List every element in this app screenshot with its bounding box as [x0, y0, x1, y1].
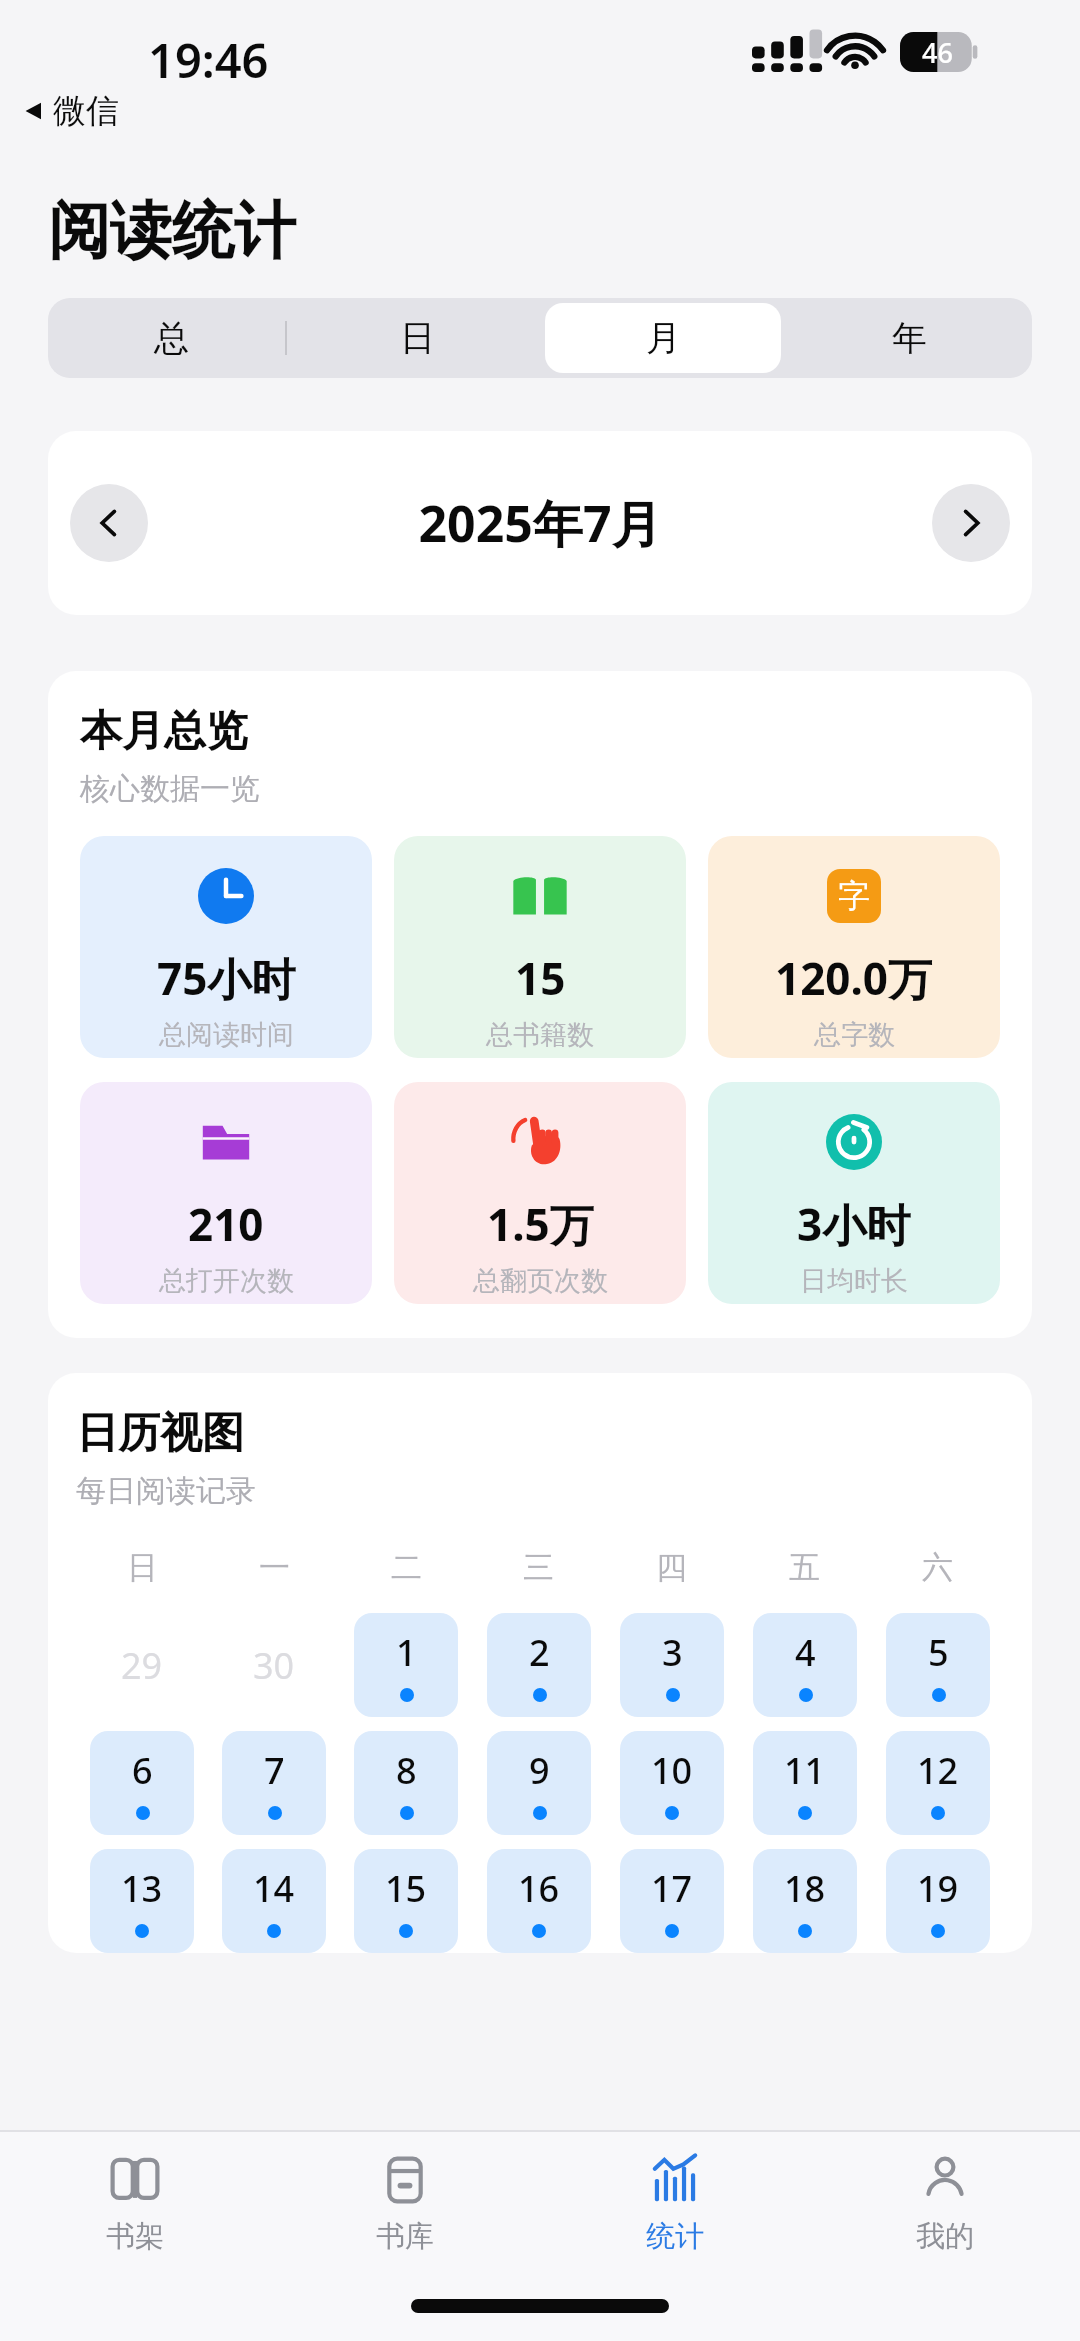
- button[interactable]: 总: [53, 303, 289, 373]
- button[interactable]: 我的: [810, 2132, 1080, 2282]
- button[interactable]: 3: [620, 1613, 724, 1717]
- staticText: 1.5万: [487, 1194, 594, 1254]
- staticText: 总打开次数: [159, 1264, 294, 1298]
- staticText: 阅读统计: [48, 192, 296, 270]
- staticText: 每日阅读记录: [76, 1472, 256, 1510]
- staticText: 16: [518, 1864, 560, 1913]
- staticText: 4: [795, 1628, 816, 1677]
- staticText: 书库: [376, 2218, 434, 2255]
- button[interactable]: 14: [222, 1849, 326, 1953]
- button[interactable]: 日: [299, 303, 535, 373]
- staticText: 字: [838, 876, 870, 916]
- button[interactable]: Previous month: [70, 484, 148, 562]
- staticText: 三: [523, 1548, 554, 1587]
- staticText: 二: [391, 1548, 422, 1587]
- staticText: 17: [651, 1864, 693, 1913]
- button[interactable]: 10: [620, 1731, 724, 1835]
- staticText: 46: [922, 34, 953, 71]
- staticText: 210: [188, 1194, 264, 1254]
- staticText: 75小时: [157, 948, 296, 1008]
- staticText: 微信: [53, 90, 119, 132]
- button[interactable]: 8: [354, 1731, 458, 1835]
- button[interactable]: 书库: [270, 2132, 540, 2282]
- staticText: 月: [646, 316, 681, 360]
- button[interactable]: 7: [222, 1731, 326, 1835]
- staticText: 8: [396, 1746, 417, 1795]
- staticText: 19:46: [148, 28, 269, 92]
- staticText: 一: [259, 1548, 290, 1587]
- staticText: 四: [656, 1548, 687, 1587]
- staticText: 年: [892, 316, 927, 360]
- staticText: 7: [264, 1746, 285, 1795]
- button[interactable]: 微信: [20, 88, 123, 134]
- staticText: 五: [789, 1548, 820, 1587]
- button[interactable]: 15: [354, 1849, 458, 1953]
- button[interactable]: 17: [620, 1849, 724, 1953]
- staticText: 18: [784, 1864, 826, 1913]
- staticText: 日均时长: [800, 1264, 908, 1298]
- staticText: 3小时: [797, 1194, 911, 1254]
- staticText: 13: [121, 1864, 163, 1913]
- staticText: 11: [784, 1746, 826, 1795]
- staticText: 2025年7月: [148, 489, 932, 557]
- button[interactable]: 9: [487, 1731, 591, 1835]
- staticText: 总字数: [814, 1018, 895, 1052]
- button[interactable]: 11: [753, 1731, 857, 1835]
- button[interactable]: 19: [886, 1849, 990, 1953]
- button[interactable]: 16: [487, 1849, 591, 1953]
- staticText: 我的: [916, 2218, 974, 2255]
- staticText: 30: [253, 1641, 295, 1690]
- staticText: 总: [154, 316, 189, 360]
- button[interactable]: 5: [886, 1613, 990, 1717]
- staticText: 六: [922, 1548, 953, 1587]
- button[interactable]: 3小时: [708, 1082, 1000, 1304]
- staticText: 15: [515, 948, 566, 1008]
- button[interactable]: 月: [545, 303, 781, 373]
- staticText: 6: [132, 1746, 153, 1795]
- button[interactable]: 18: [753, 1849, 857, 1953]
- staticText: 3: [662, 1628, 683, 1677]
- staticText: 日: [400, 316, 435, 360]
- staticText: 书架: [106, 2218, 164, 2255]
- button[interactable]: 1: [354, 1613, 458, 1717]
- staticText: 1: [396, 1628, 417, 1677]
- staticText: 总书籍数: [486, 1018, 594, 1052]
- button[interactable]: 字: [708, 836, 1000, 1058]
- staticText: 2: [529, 1628, 550, 1677]
- staticText: 核心数据一览: [80, 770, 260, 808]
- button[interactable]: 书架: [0, 2132, 270, 2282]
- button[interactable]: 29: [90, 1613, 194, 1717]
- button[interactable]: 统计: [540, 2132, 810, 2282]
- button[interactable]: 210: [80, 1082, 372, 1304]
- button[interactable]: 30: [222, 1613, 326, 1717]
- button[interactable]: 2: [487, 1613, 591, 1717]
- staticText: 10: [651, 1746, 693, 1795]
- staticText: 19: [917, 1864, 959, 1913]
- button[interactable]: 4: [753, 1613, 857, 1717]
- button[interactable]: 15: [394, 836, 686, 1058]
- button[interactable]: Next month: [932, 484, 1010, 562]
- staticText: 12: [917, 1746, 959, 1795]
- staticText: 120.0万: [775, 948, 933, 1008]
- button[interactable]: 年: [791, 303, 1027, 373]
- staticText: 5: [928, 1628, 949, 1677]
- button[interactable]: 13: [90, 1849, 194, 1953]
- staticText: 本月总览: [80, 705, 248, 758]
- staticText: 14: [253, 1864, 295, 1913]
- button[interactable]: 12: [886, 1731, 990, 1835]
- staticText: 15: [385, 1864, 427, 1913]
- staticText: 总阅读时间: [159, 1018, 294, 1052]
- button[interactable]: 6: [90, 1731, 194, 1835]
- staticText: 统计: [646, 2218, 704, 2255]
- button[interactable]: 1.5万: [394, 1082, 686, 1304]
- staticText: 29: [121, 1641, 163, 1690]
- staticText: 日: [127, 1548, 158, 1587]
- staticText: 总翻页次数: [473, 1264, 608, 1298]
- button[interactable]: 75小时: [80, 836, 372, 1058]
- staticText: 9: [529, 1746, 550, 1795]
- staticText: 日历视图: [76, 1407, 244, 1460]
